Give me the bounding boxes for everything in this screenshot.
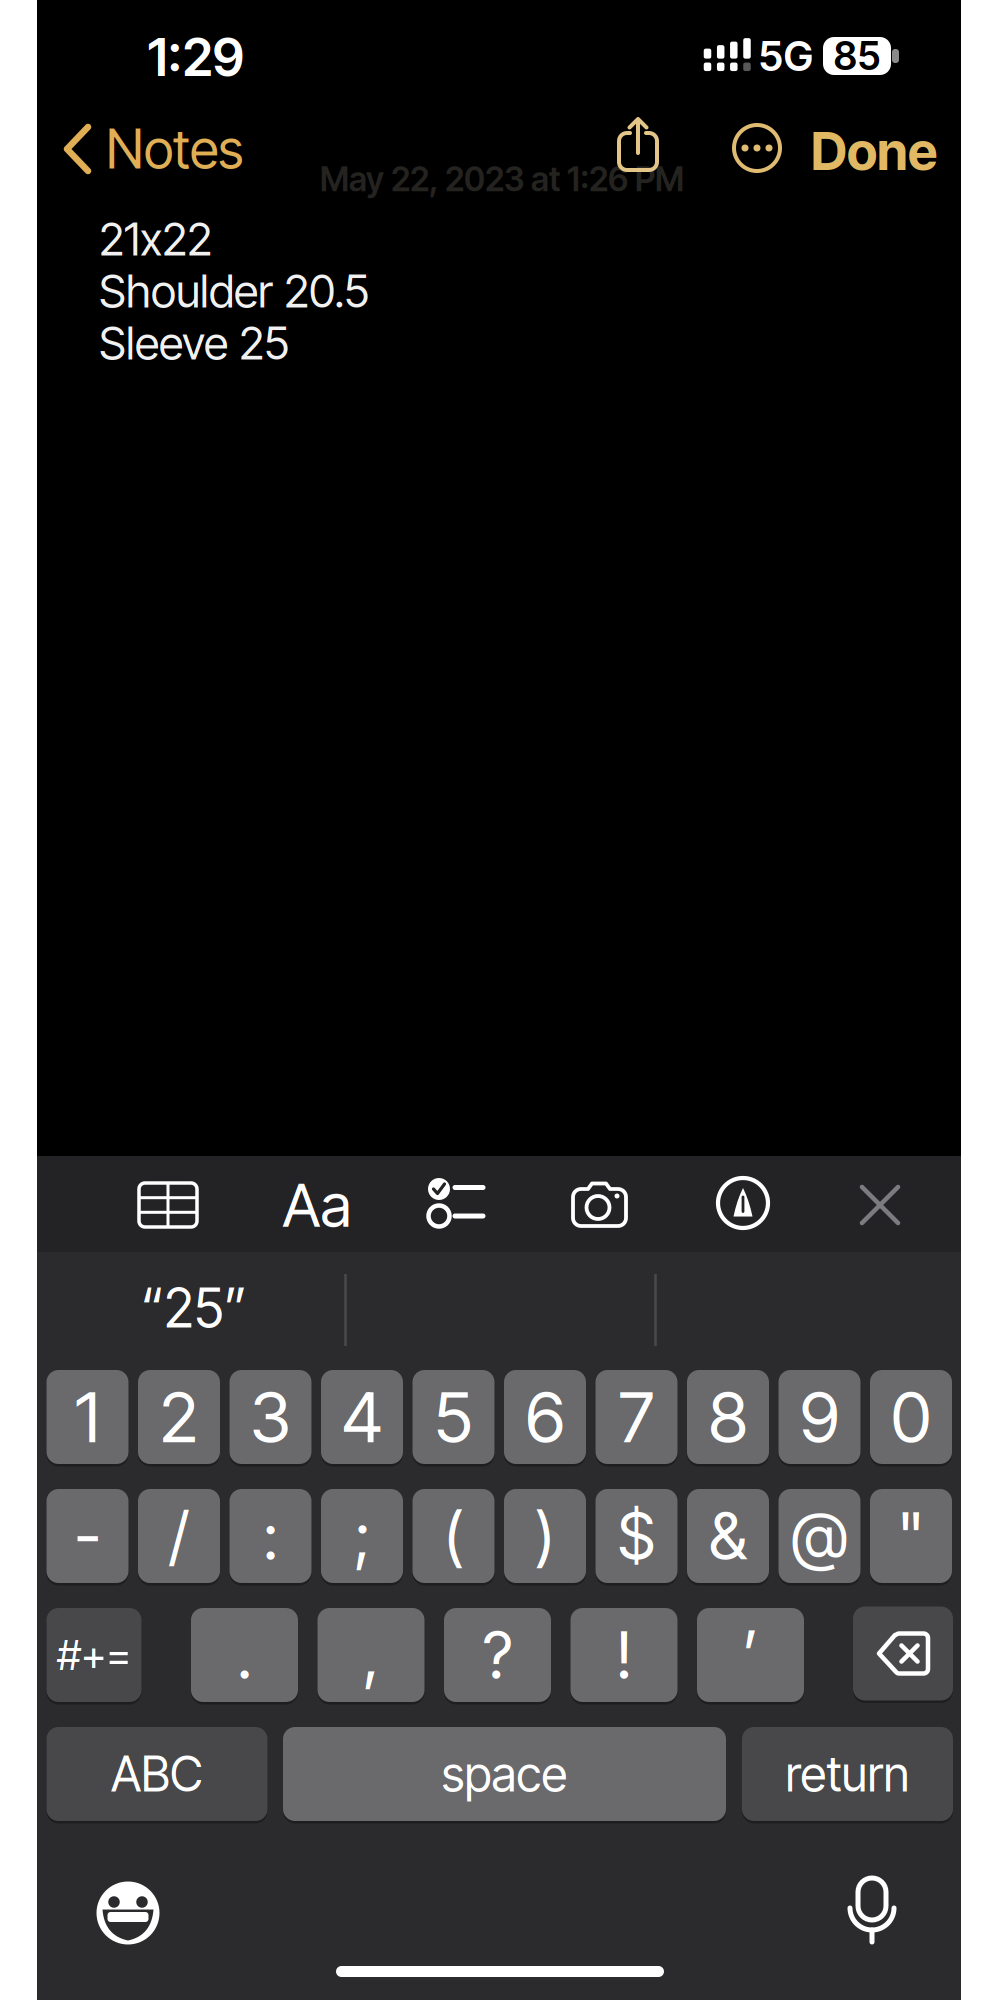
button[interactable]: ) [504,1487,586,1584]
button[interactable]: Checklist [427,1178,491,1236]
staticText: 9 [800,1375,839,1459]
staticText: May 22, 2023 at 1:26 PM [320,159,684,199]
button[interactable]: Dismiss keyboard [858,1183,902,1227]
button[interactable]: ; [321,1487,403,1584]
staticText: 22 [162,212,212,266]
staticText: : [263,1497,278,1575]
staticText: return [785,1745,909,1803]
button[interactable]: 9 [778,1368,860,1465]
staticText: - [74,1497,100,1575]
staticText: ( [443,1497,463,1575]
button[interactable]: Markup [716,1176,770,1230]
staticText: 3 [250,1375,291,1459]
button[interactable]: . [191,1606,298,1703]
staticText: , [363,1616,379,1694]
staticText: ABC [111,1745,203,1803]
staticText: x [140,212,162,266]
staticText: 85 [833,33,880,79]
button[interactable]: Notes [64,119,276,179]
button[interactable]: Delete [853,1606,953,1703]
staticText: ? [483,1616,512,1694]
staticText: 5 [434,1375,473,1459]
button[interactable]: 5 [412,1368,494,1465]
button[interactable]: ’ [697,1606,804,1703]
button[interactable]: 7 [595,1368,677,1465]
staticText: ; [354,1497,370,1575]
staticText: 2 [159,1375,198,1459]
staticText: ) [535,1497,555,1575]
button[interactable]: 2 [138,1368,220,1465]
button[interactable]: , [317,1606,424,1703]
button[interactable]: 3 [229,1368,311,1465]
button[interactable]: ABC [46,1725,267,1822]
staticText: 1 [75,1375,100,1459]
button[interactable]: $ [595,1487,677,1584]
button[interactable]: Camera [571,1181,633,1231]
staticText: Aa [282,1169,351,1241]
button[interactable]: Done [799,121,949,181]
button[interactable]: - [46,1487,128,1584]
staticText: “25” [141,1276,247,1340]
staticText: / [169,1497,189,1575]
staticText: 1:29 [147,25,244,88]
staticText: 7 [618,1375,654,1459]
button[interactable]: / [138,1487,220,1584]
staticText: 5G [758,31,813,81]
button[interactable]: " [870,1487,952,1584]
staticText: ! [616,1616,632,1694]
button[interactable]: @ [778,1487,860,1584]
staticText: 4 [341,1375,382,1459]
button[interactable]: #+= [46,1606,141,1703]
button[interactable]: 6 [504,1368,586,1465]
button[interactable]: Insert table [137,1179,199,1231]
button[interactable]: Dictate [847,1876,897,1946]
button[interactable]: 0 [870,1368,952,1465]
button[interactable]: “25” [94,1273,294,1343]
staticText: " [897,1497,924,1575]
staticText: space [441,1745,567,1803]
staticText: Shoulder 20.5 [99,264,369,318]
staticText: ’ [742,1616,758,1694]
staticText: 0 [891,1375,931,1459]
staticText: @ [791,1497,848,1575]
button[interactable]: More [729,120,785,176]
button[interactable]: return [742,1725,953,1822]
button[interactable]: space [283,1725,726,1822]
staticText: 21 [99,212,140,266]
staticText: 8 [708,1375,747,1459]
button[interactable]: ( [412,1487,494,1584]
button[interactable]: & [687,1487,769,1584]
button[interactable]: 8 [687,1368,769,1465]
button[interactable]: Format [257,1170,377,1240]
staticText: Done [811,119,937,182]
button[interactable]: ? [444,1606,551,1703]
button[interactable]: ! [570,1606,677,1703]
button[interactable]: 4 [321,1368,403,1465]
staticText: #+= [57,1630,131,1680]
staticText: 6 [525,1375,564,1459]
button[interactable]: Emoji [96,1881,159,1944]
button[interactable]: : [229,1487,311,1584]
staticText: . [237,1616,252,1694]
staticText: & [709,1497,747,1575]
staticText: $ [617,1497,655,1575]
staticText: Notes [106,117,243,181]
staticText: Sleeve 25 [99,316,289,370]
button[interactable]: Share [613,114,669,178]
button[interactable]: 1 [46,1368,128,1465]
